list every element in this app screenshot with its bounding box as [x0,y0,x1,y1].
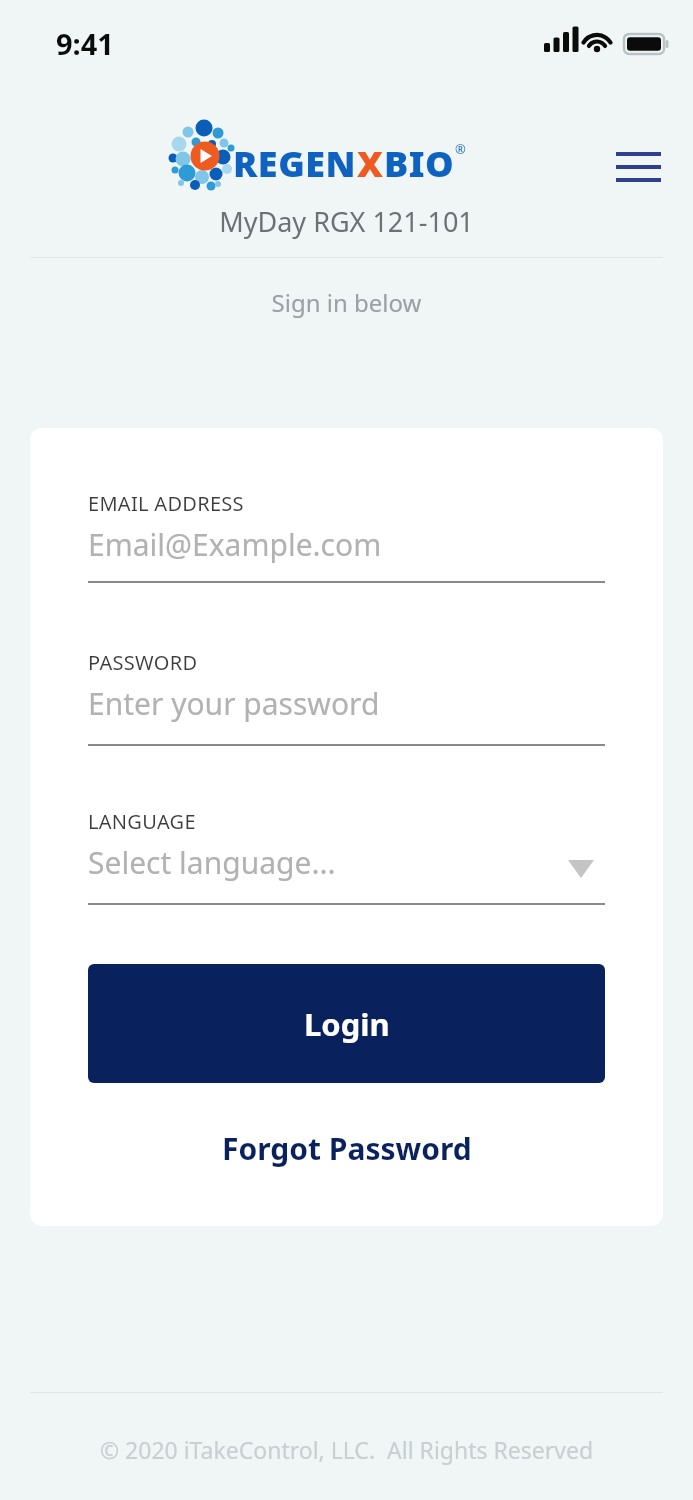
staticText: Select language... [88,842,336,883]
staticText: LANGUAGE [88,808,196,835]
button[interactable]: Login [88,964,605,1083]
staticText: 9:41 [56,24,114,63]
staticText: Forgot Password [222,1128,472,1169]
staticText: © 2020 iTakeControl, LLC. All Rights Res… [0,1434,693,1465]
button[interactable]: Select language... [88,832,605,902]
staticText: Email@Example.com [88,524,382,565]
staticText: BIO [384,139,455,188]
staticText: REGEN [233,139,357,188]
staticText: Enter your password [88,683,380,724]
staticText: Sign in below [0,286,693,319]
staticText: MyDay RGX 121-101 [0,203,693,240]
staticText: X [357,139,384,188]
staticText: Login [304,1003,390,1045]
staticText: ® [455,140,466,158]
button[interactable]: Menu [606,138,672,192]
staticText: EMAIL ADDRESS [88,490,244,517]
button[interactable]: Email@Example.com [88,524,605,580]
staticText: PASSWORD [88,649,198,676]
button[interactable]: Forgot Password [88,1118,605,1178]
button[interactable]: Enter your password [88,683,605,739]
